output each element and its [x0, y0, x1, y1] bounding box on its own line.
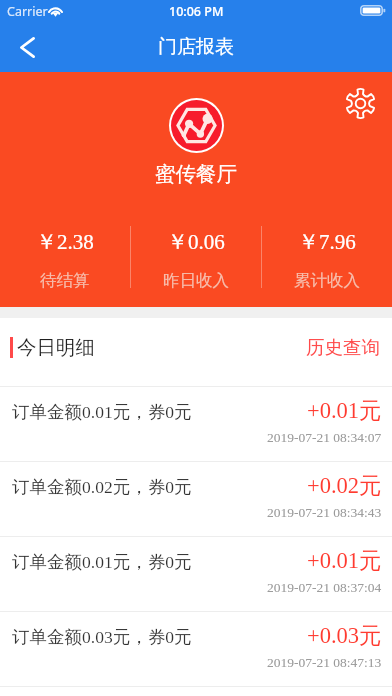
button[interactable]: 订单金额0.03元，券0元 [0, 612, 392, 686]
staticText: 累计收入 [294, 270, 360, 291]
staticText: 蜜传餐厅 [155, 161, 237, 187]
staticText: 2019-07-21 08:34:43 [267, 505, 382, 520]
staticText: 订单金额0.03元，券0元 [12, 626, 192, 648]
staticText: +0.03元 [307, 621, 382, 649]
button[interactable]: ￥7.96 [262, 220, 392, 291]
staticText: 历史查询 [306, 336, 380, 359]
staticText: 订单金额0.01元，券0元 [12, 401, 192, 423]
button[interactable]: 订单金额0.01元，券0元 [0, 387, 392, 461]
staticText: ￥0.06 [167, 229, 225, 255]
staticText: 昨日收入 [163, 270, 229, 291]
staticText: 2019-07-21 08:47:13 [267, 655, 382, 670]
staticText: +0.02元 [307, 471, 382, 499]
staticText: 2019-07-21 08:37:04 [267, 580, 382, 595]
staticText: 10:06 PM [169, 3, 224, 20]
button[interactable]: 历史查询 [294, 328, 392, 367]
staticText: +0.01元 [307, 546, 382, 574]
staticText: Carrier [7, 3, 48, 20]
staticText: 2019-07-21 08:34:07 [267, 430, 382, 445]
button[interactable]: ￥2.38 [0, 220, 130, 291]
button[interactable]: ￥0.06 [131, 220, 261, 291]
button[interactable]: Settings [340, 83, 380, 123]
staticText: 订单金额0.01元，券0元 [12, 551, 192, 573]
button[interactable]: Back [0, 24, 46, 70]
staticText: 门店报表 [158, 35, 234, 59]
staticText: 待结算 [40, 270, 90, 291]
staticText: 订单金额0.02元，券0元 [12, 476, 192, 498]
button[interactable]: 订单金额0.02元，券0元 [0, 462, 392, 536]
staticText: ￥7.96 [298, 229, 356, 255]
staticText: ￥2.38 [36, 229, 94, 255]
staticText: +0.01元 [307, 396, 382, 424]
button[interactable]: 订单金额0.01元，券0元 [0, 537, 392, 611]
staticText: 今日明细 [17, 335, 95, 360]
